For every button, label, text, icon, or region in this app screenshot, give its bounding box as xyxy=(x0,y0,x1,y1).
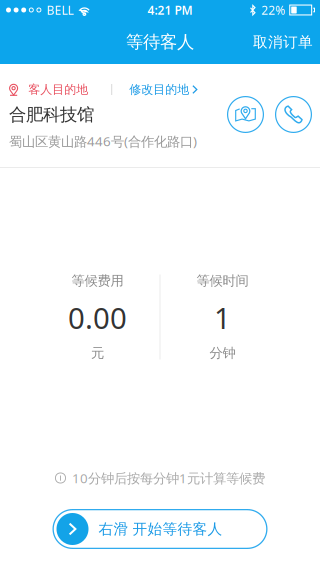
staticText: BELL xyxy=(46,2,73,18)
staticText: 等候时间 xyxy=(196,273,248,289)
staticText: 蜀山区黄山路446号(合作化路口) xyxy=(9,132,197,150)
staticText: 客人目的地 xyxy=(28,82,88,97)
staticText: 10分钟后按每分钟1元计算等候费 xyxy=(72,469,265,487)
button[interactable]: 拨打电话 xyxy=(275,96,312,133)
staticText: 取消订单 xyxy=(253,33,313,51)
staticText: 1 xyxy=(214,298,231,337)
staticText: 修改目的地 xyxy=(129,82,189,97)
button[interactable]: 修改目的地 xyxy=(112,78,206,100)
staticText: 等待客人 xyxy=(126,31,194,53)
button[interactable]: 取消订单 xyxy=(246,20,320,64)
staticText: 合肥科技馆 xyxy=(9,104,94,125)
staticText: 右滑 开始等待客人 xyxy=(98,520,222,538)
staticText: 4:21 PM xyxy=(147,2,192,18)
staticText: 分钟 xyxy=(209,345,235,361)
button[interactable]: 查看地图 xyxy=(227,96,264,133)
staticText: 元 xyxy=(91,345,104,361)
button[interactable]: 右滑 开始等待客人 xyxy=(52,509,267,549)
staticText: 等候费用 xyxy=(71,273,123,289)
staticText: 22% xyxy=(261,2,285,18)
staticText: 0.00 xyxy=(68,298,127,337)
